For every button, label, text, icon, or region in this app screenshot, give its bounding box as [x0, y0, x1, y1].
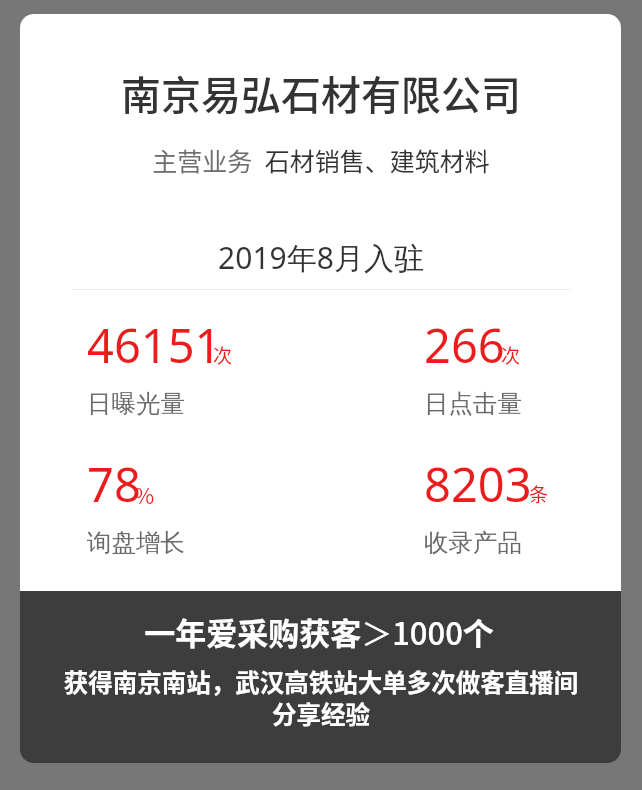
staticText: 条	[529, 480, 549, 508]
staticText: 收录产品	[424, 527, 522, 558]
staticText: 266	[424, 313, 505, 377]
staticText: 日曝光量	[87, 388, 185, 419]
staticText: 询盘增长	[87, 527, 185, 558]
button[interactable]	[416, 460, 616, 560]
staticText: 获得南京南站，武汉高铁站大单多次做客直播间 分享经验	[0, 664, 642, 731]
staticText: 次	[213, 341, 233, 369]
staticText: 46151	[87, 313, 222, 377]
button[interactable]	[20, 14, 621, 591]
button[interactable]	[416, 321, 616, 421]
button[interactable]	[79, 321, 279, 421]
button[interactable]	[20, 591, 621, 763]
staticText: 次	[501, 341, 521, 369]
staticText: 一年爱采购获客＞1000个	[0, 609, 640, 654]
button[interactable]	[79, 460, 279, 560]
staticText: %	[134, 478, 155, 510]
staticText: 日点击量	[424, 388, 522, 419]
staticText: 78	[87, 452, 141, 516]
staticText: 8203	[424, 452, 532, 516]
staticText: 南京易弘石材有限公司	[0, 64, 642, 122]
staticText: 2019年8月入驻	[0, 237, 642, 278]
staticText: 主营业务 石材销售、建筑材料	[0, 142, 642, 178]
